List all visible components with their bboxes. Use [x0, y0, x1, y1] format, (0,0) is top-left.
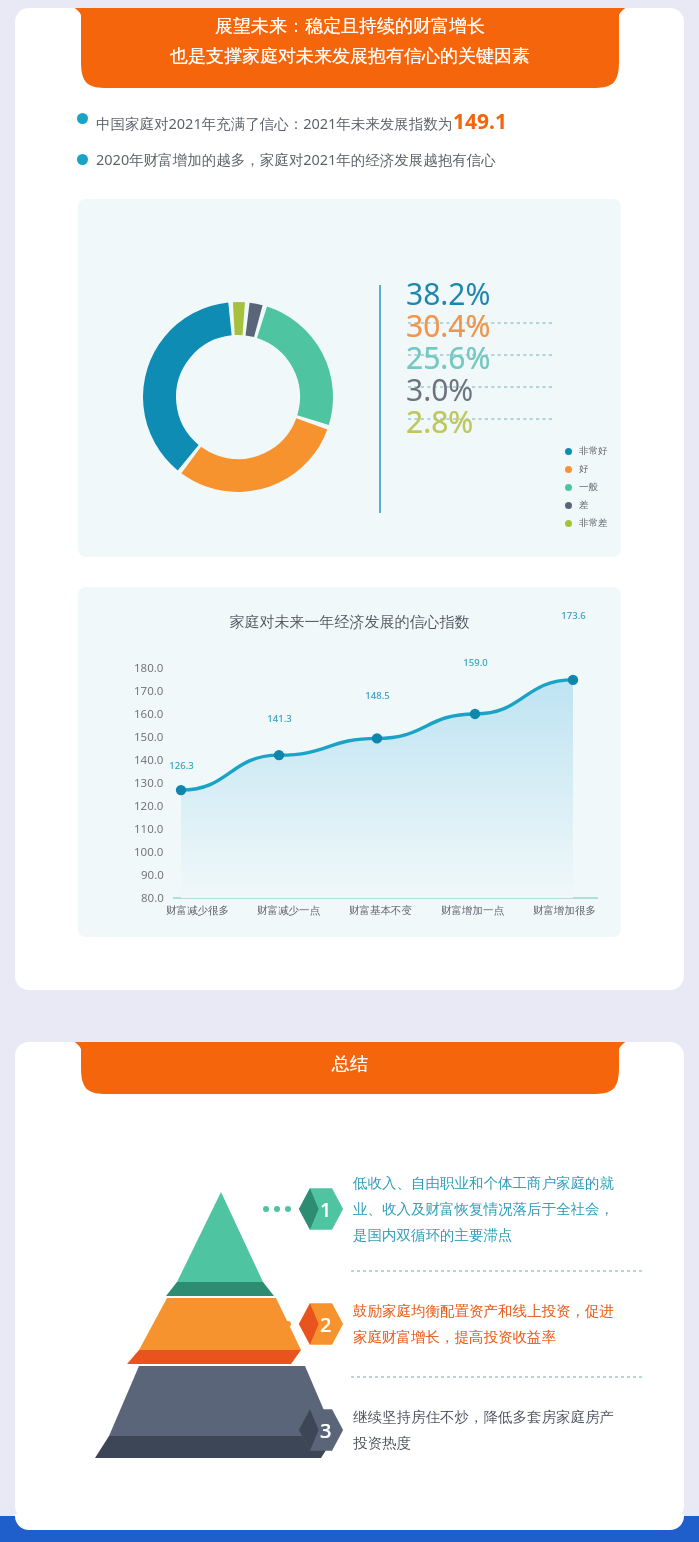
staticText: 3.0% [406, 369, 474, 401]
staticText: 25.6% [406, 337, 491, 369]
staticText: 继续坚持房住不炒，降低多套房家庭房产投资热度 [353, 1408, 619, 1453]
staticText: 非常差 [579, 517, 608, 529]
staticText: 非常好 [579, 445, 608, 457]
staticText: 173.6 [561, 609, 586, 622]
staticText: 一般 [579, 481, 598, 493]
staticText: 3 [320, 1417, 332, 1444]
button[interactable]: 展望未来：稳定且持续的财富增长 [64, 8, 636, 88]
staticText: 1 [320, 1196, 332, 1223]
staticText: 120.0 [134, 798, 164, 814]
staticText: 财富增加很多 [533, 904, 596, 917]
staticText: 鼓励家庭均衡配置资产和线上投资，促进家庭财富增长，提高投资收益率 [353, 1302, 619, 1347]
staticText: 148.5 [365, 689, 390, 702]
staticText: 中国家庭对2021年充满了信心：2021年未来发展指数为 [96, 113, 453, 133]
staticText: 180.0 [134, 660, 164, 676]
staticText: 也是支撑家庭对未来发展抱有信心的关键因素 [170, 45, 530, 68]
button[interactable]: 2 [263, 1276, 619, 1372]
staticText: 财富减少一点 [257, 904, 320, 917]
staticText: 家庭对未来一年经济发展的信心指数 [78, 613, 621, 632]
staticText: 90.0 [141, 867, 164, 883]
staticText: 170.0 [134, 683, 164, 699]
staticText: 38.2% [406, 273, 491, 305]
staticText: 160.0 [134, 706, 164, 722]
button[interactable]: 总结 [64, 1042, 636, 1094]
staticText: 149.1 [453, 107, 507, 136]
staticText: 141.3 [267, 712, 292, 725]
staticText: 140.0 [134, 752, 164, 768]
staticText: 2 [320, 1311, 332, 1338]
staticText: 80.0 [141, 890, 164, 906]
button[interactable]: 3 [263, 1382, 619, 1478]
staticText: 130.0 [134, 775, 164, 791]
staticText: 差 [579, 499, 589, 511]
staticText: 30.4% [406, 305, 491, 337]
staticText: 159.0 [463, 656, 488, 669]
staticText: 150.0 [134, 729, 164, 745]
button[interactable]: 1 [263, 1152, 619, 1266]
staticText: 110.0 [134, 821, 164, 837]
staticText: 低收入、自由职业和个体工商户家庭的就业、收入及财富恢复情况落后于全社会，是国内双… [353, 1174, 619, 1245]
staticText: 总结 [332, 1053, 368, 1076]
staticText: 展望未来：稳定且持续的财富增长 [215, 15, 485, 38]
staticText: 财富增加一点 [441, 904, 504, 917]
staticText: 财富减少很多 [166, 904, 229, 917]
staticText: 126.3 [169, 759, 194, 772]
staticText: 好 [579, 463, 589, 475]
staticText: 100.0 [134, 844, 164, 860]
staticText: 财富基本不变 [349, 904, 412, 917]
staticText: 2.8% [406, 401, 474, 433]
staticText: 2020年财富增加的越多，家庭对2021年的经济发展越抱有信心 [96, 149, 496, 169]
